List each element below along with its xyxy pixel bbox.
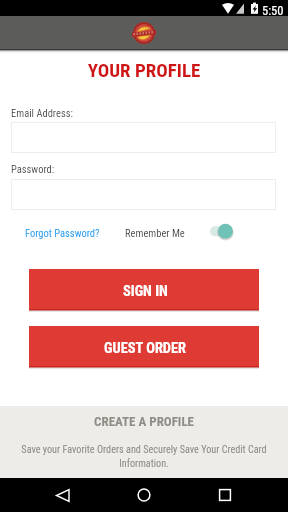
button[interactable]: Forgot Password? [25, 227, 100, 239]
staticText: Password: [11, 163, 55, 175]
staticText: GUEST ORDER [104, 340, 187, 357]
button[interactable]: Back [45, 478, 81, 512]
staticText: Save your Favorite Orders and Securely S… [14, 444, 274, 470]
staticText: YOUR PROFILE [0, 59, 288, 81]
button[interactable]: SIGN IN [29, 269, 259, 312]
button[interactable]: Home [126, 478, 162, 512]
staticText: Email Address: [11, 107, 73, 119]
staticText: 5:50 [262, 3, 284, 18]
button[interactable] [11, 122, 276, 153]
button[interactable]: GUEST ORDER [29, 326, 259, 369]
button[interactable]: Remember Me toggle [210, 223, 238, 241]
button[interactable]: Recent apps [207, 478, 243, 512]
staticText: SIGN IN [123, 283, 168, 300]
button[interactable] [11, 179, 276, 210]
staticText: CREATE A PROFILE [0, 414, 288, 429]
staticText: Remember Me [125, 227, 185, 239]
staticText: Forgot Password? [25, 227, 100, 239]
